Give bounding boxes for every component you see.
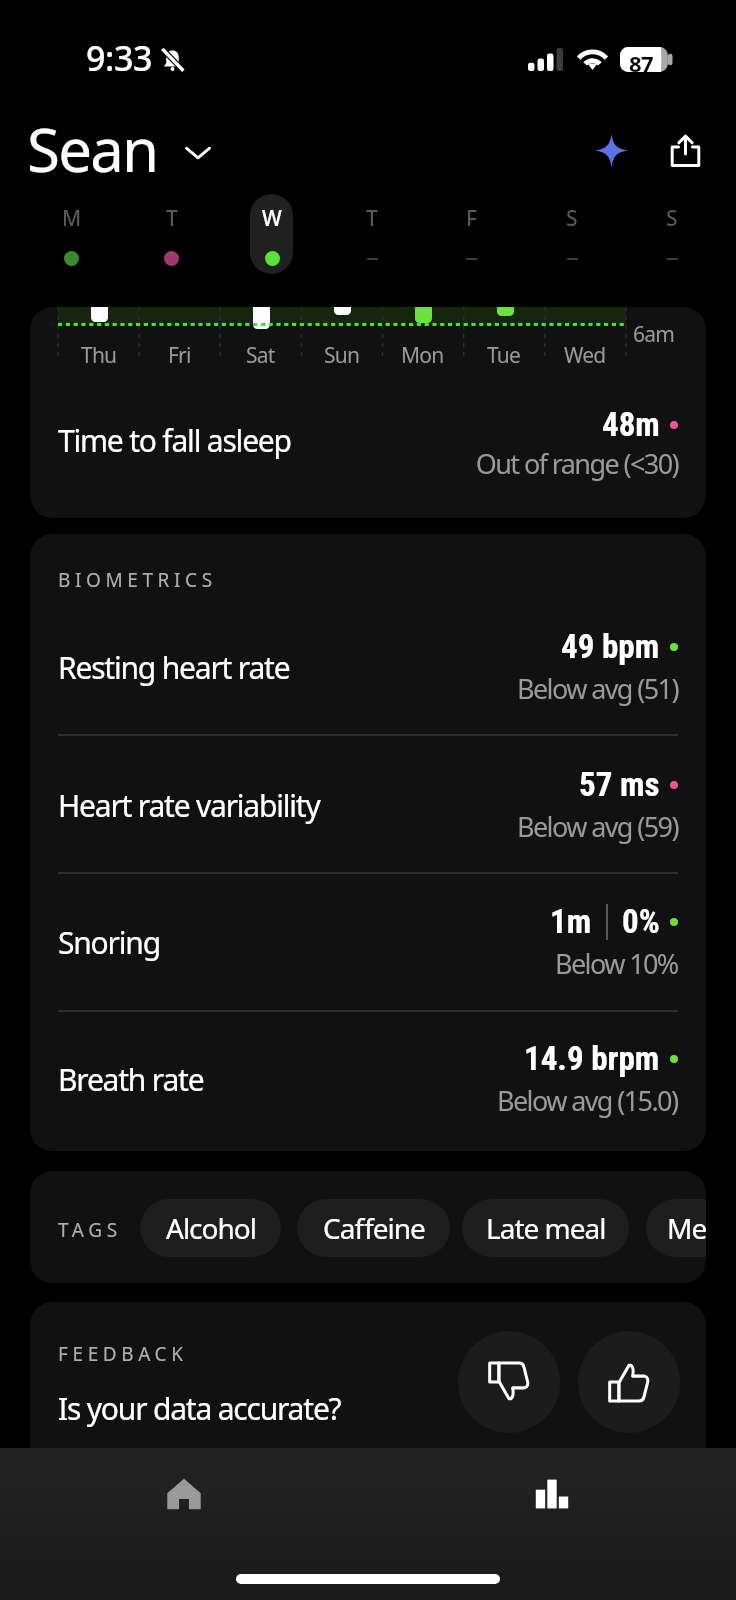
button[interactable]: Breath rate [30,1012,706,1146]
staticText: 6am [633,320,675,349]
button[interactable]: Thumbs down [458,1331,560,1433]
staticText: 48m [602,405,660,444]
button[interactable]: W [250,194,293,274]
button[interactable]: F [450,194,493,274]
staticText: Out of range (<30) [30,445,678,482]
staticText: Heart rate variability [58,785,320,826]
button[interactable]: S [550,194,593,274]
staticText: BIOMETRICS [58,567,217,593]
staticText: 1m [550,902,592,941]
staticText: Below 10% [555,945,678,982]
button[interactable]: Heart rate variability [30,738,706,872]
button[interactable]: Alcohol [140,1199,281,1257]
button[interactable]: Meditation [646,1199,706,1257]
staticText: 0% [622,902,660,941]
staticText: 49 bpm [561,627,660,666]
button[interactable]: S [650,194,693,274]
staticText: F [466,204,477,233]
button[interactable]: T [350,194,393,274]
button[interactable]: Trends [368,1444,736,1544]
button[interactable]: Share [655,120,715,180]
staticText: 57 ms [579,765,660,804]
button[interactable]: Caffeine [297,1199,450,1257]
staticText: Meditation [667,1209,706,1247]
button[interactable]: Sean [14,106,227,188]
staticText: Resting heart rate [58,647,290,688]
staticText: 9:33 [86,35,152,81]
staticText: W [262,204,282,233]
staticText: Below avg (59) [517,808,678,845]
staticText: S [566,204,578,233]
staticText: Time to fall asleep [58,420,291,461]
staticText: S [666,204,678,233]
staticText: 87 [629,48,654,73]
staticText: Wed [564,341,606,370]
staticText: T [366,204,378,233]
staticText: Is your data accurate? [58,1388,341,1429]
button[interactable]: Resting heart rate [30,600,706,734]
staticText: Below avg (15.0) [497,1082,678,1119]
button[interactable]: AI insights [581,120,641,180]
button[interactable]: T [150,194,193,274]
button[interactable]: Snoring [30,875,706,1009]
staticText: T [166,204,178,233]
staticText: Below avg (51) [517,670,678,707]
staticText: TAGS [58,1217,122,1243]
staticText: 14.9 brpm [524,1039,660,1078]
staticText: Caffeine [323,1209,425,1247]
staticText: Late meal [486,1209,606,1247]
button[interactable]: Home [0,1444,368,1544]
staticText: Fri [168,341,191,370]
staticText: M [62,204,81,233]
staticText: Sean [27,108,158,190]
staticText: Sun [324,341,360,370]
staticText: Breath rate [58,1059,204,1100]
staticText: Tue [487,341,521,370]
staticText: FEEDBACK [58,1341,188,1367]
staticText: Thu [81,341,117,370]
staticText: Snoring [58,922,160,963]
staticText: Mon [401,341,444,370]
button[interactable]: M [50,194,93,274]
button[interactable]: Thumbs up [578,1331,680,1433]
staticText: Sat [246,341,275,370]
staticText: Alcohol [166,1209,256,1247]
button[interactable]: Late meal [462,1199,629,1257]
